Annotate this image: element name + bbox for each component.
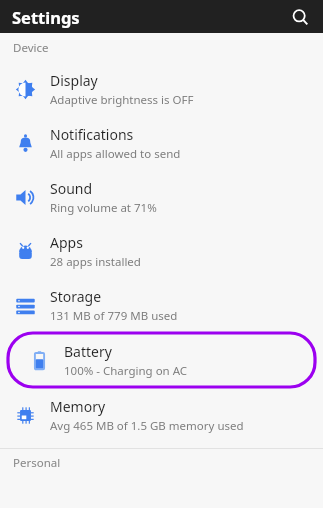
button[interactable]: Storage xyxy=(0,278,323,332)
staticText: Storage xyxy=(50,287,102,306)
button[interactable]: Search xyxy=(286,3,314,31)
button[interactable]: Sound xyxy=(0,170,323,224)
button[interactable]: Memory xyxy=(0,388,323,442)
staticText: Device xyxy=(13,40,49,56)
staticText: 100% - Charging on AC xyxy=(64,363,188,379)
button[interactable]: Apps xyxy=(0,224,323,278)
staticText: Display xyxy=(50,71,98,90)
staticText: 131 MB of 779 MB used xyxy=(50,308,178,324)
button[interactable]: Battery xyxy=(8,333,315,387)
staticText: Ring volume at 71% xyxy=(50,200,157,216)
staticText: Memory xyxy=(50,397,106,416)
button[interactable]: Notifications xyxy=(0,116,323,170)
button[interactable]: Display xyxy=(0,62,323,116)
staticText: Adaptive brightness is OFF xyxy=(50,92,194,108)
staticText: 28 apps installed xyxy=(50,254,141,270)
staticText: All apps allowed to send xyxy=(50,146,181,162)
staticText: Settings xyxy=(12,6,80,28)
staticText: Apps xyxy=(50,233,83,252)
staticText: Sound xyxy=(50,179,93,198)
staticText: Notifications xyxy=(50,125,134,144)
staticText: Personal xyxy=(13,455,61,471)
staticText: Battery xyxy=(64,342,112,361)
staticText: Avg 465 MB of 1.5 GB memory used xyxy=(50,418,244,434)
